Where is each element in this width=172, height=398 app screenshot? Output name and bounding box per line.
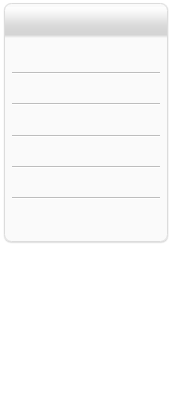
button[interactable] — [4, 3, 168, 242]
